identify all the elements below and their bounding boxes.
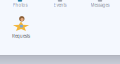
button[interactable]: Messages — [80, 0, 120, 9]
button[interactable]: Requests — [4, 16, 38, 39]
staticText: Photos — [12, 3, 27, 8]
staticText: Events — [53, 3, 66, 8]
button[interactable]: Photos — [0, 0, 40, 9]
staticText: Requests — [12, 33, 30, 39]
button[interactable]: Events — [40, 0, 80, 9]
staticText: Messages — [90, 3, 109, 8]
